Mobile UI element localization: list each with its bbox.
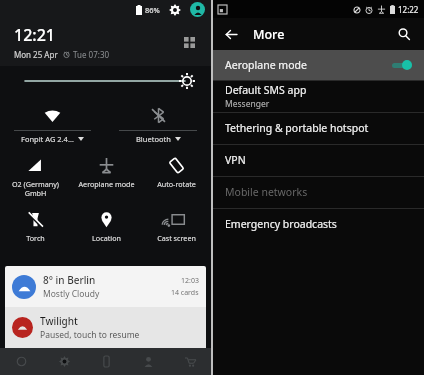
- staticText: Aeroplane mode: [78, 179, 135, 189]
- button[interactable]: O2 (Germany) GmbH & Co. OHG 4G: [0, 152, 71, 204]
- staticText: Emergency broadcasts: [225, 217, 337, 231]
- button[interactable]: Account: [127, 348, 169, 375]
- staticText: 86%: [145, 5, 160, 15]
- staticText: 12:22: [398, 4, 419, 15]
- button[interactable]: Cast screen: [141, 206, 211, 254]
- button[interactable]: Bluetooth: [105, 100, 211, 146]
- button[interactable]: User: [190, 2, 205, 17]
- staticText: Auto-rotate: [157, 179, 196, 189]
- staticText: Mon 25 Apr: [14, 49, 58, 60]
- staticText: Torch: [26, 233, 45, 243]
- staticText: Mobile networks: [225, 185, 308, 199]
- button[interactable]: Aeroplane mode: [71, 152, 141, 200]
- button[interactable]: Default SMS app: [213, 80, 424, 112]
- staticText: Cast screen: [157, 233, 196, 243]
- button[interactable]: Back: [0, 348, 43, 375]
- staticText: Location: [92, 233, 121, 243]
- staticText: Tethering & portable hotspot: [225, 121, 369, 135]
- staticText: Aeroplane mode: [225, 58, 307, 72]
- button[interactable]: Twilight: [5, 307, 206, 348]
- staticText: Twilight: [40, 314, 78, 328]
- button[interactable]: Brightness: [0, 66, 211, 96]
- staticText: More: [253, 26, 285, 43]
- button[interactable]: Cart: [169, 348, 211, 375]
- button[interactable]: Mobile networks: [213, 176, 424, 208]
- button[interactable]: Settings: [168, 3, 182, 17]
- staticText: 8° in Berlin: [43, 273, 96, 287]
- button[interactable]: Location: [71, 206, 141, 254]
- button[interactable]: Settings: [43, 348, 85, 375]
- button[interactable]: Edit tiles: [181, 34, 197, 50]
- button[interactable]: Aeroplane mode: [213, 50, 424, 80]
- staticText: Messenger: [225, 98, 270, 110]
- staticText: Paused, touch to resume: [40, 329, 140, 341]
- button[interactable]: Fonpit AG 2.4…: [0, 100, 105, 146]
- staticText: VPN: [225, 153, 246, 167]
- button[interactable]: Search: [392, 22, 416, 46]
- staticText: 12:03: [181, 276, 199, 286]
- staticText: Fonpit AG 2.4…: [21, 134, 74, 144]
- button[interactable]: Back: [219, 22, 243, 46]
- button[interactable]: Torch: [0, 206, 71, 254]
- button[interactable]: Auto-rotate: [141, 152, 211, 200]
- button[interactable]: VPN: [213, 144, 424, 176]
- staticText: Tue 07:30: [73, 49, 110, 60]
- button[interactable]: 8° in Berlin: [5, 266, 206, 307]
- staticText: 14 cards: [171, 288, 199, 298]
- button[interactable]: Phone: [85, 348, 127, 375]
- staticText: Mostly Cloudy: [43, 288, 100, 300]
- staticText: Bluetooth: [136, 134, 171, 144]
- staticText: 12:21: [14, 24, 55, 46]
- staticText: Default SMS app: [225, 83, 307, 97]
- staticText: O2 (Germany) GmbH & Co. OHG 4G: [2, 179, 69, 198]
- button[interactable]: Tethering & portable hotspot: [213, 112, 424, 144]
- button[interactable]: Emergency broadcasts: [213, 208, 424, 240]
